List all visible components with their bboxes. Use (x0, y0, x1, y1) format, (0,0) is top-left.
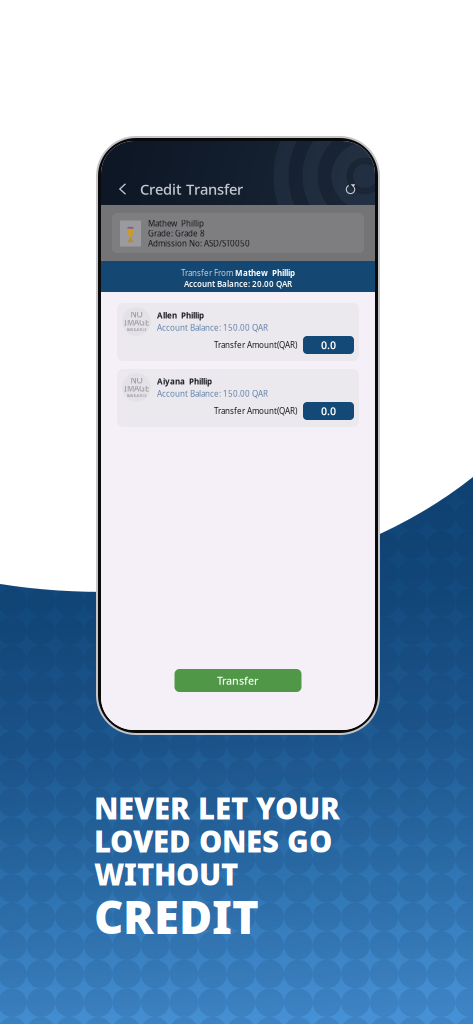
staticText: Transfer Amount(QAR) (214, 340, 297, 350)
staticText: Transfer Amount(QAR) (214, 406, 297, 416)
staticText: Account Balance: 150.00 QAR (157, 322, 268, 333)
button[interactable]: Back (108, 174, 138, 204)
staticText: Transfer (217, 673, 259, 688)
button[interactable]: NO (117, 369, 359, 427)
button[interactable]: Refresh (336, 174, 366, 204)
staticText: Mathew Phillip (148, 218, 204, 229)
staticText: NO (130, 375, 142, 386)
staticText: Allen Phillip (157, 310, 204, 321)
staticText: WITHOUT (94, 854, 238, 893)
staticText: CREDIT (94, 886, 259, 947)
staticText: 0.0 (321, 404, 336, 418)
staticText: 0.0 (321, 338, 336, 352)
staticText: Aiyana Phillip (157, 376, 212, 387)
staticText: LOVED ONES GO (94, 821, 332, 860)
staticText: NEVER LET YOUR (94, 788, 340, 827)
staticText: Admission No: ASD/ST0050 (148, 238, 250, 249)
staticText: Account Balance: 150.00 QAR (157, 388, 268, 399)
button[interactable]: Transfer (174, 669, 301, 692)
button[interactable]: NO (117, 303, 359, 361)
staticText: Grade: Grade 8 (148, 228, 205, 239)
staticText: Mathew Phillip (235, 268, 295, 278)
staticText: IMAGE (124, 383, 149, 394)
staticText: IMAGE (124, 317, 149, 328)
staticText: NO (130, 309, 142, 320)
staticText: Credit Transfer (140, 179, 243, 199)
staticText: Transfer From (181, 268, 235, 278)
staticText: AVAILABLE (126, 393, 146, 398)
staticText: Account Balance: 20.00 QAR (184, 279, 292, 289)
staticText: AVAILABLE (126, 327, 146, 332)
